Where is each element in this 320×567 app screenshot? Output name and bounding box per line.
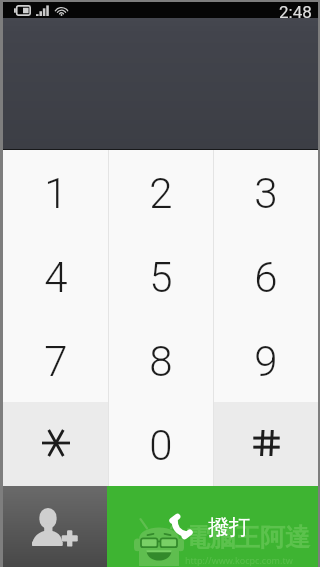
- button[interactable]: 9: [214, 318, 318, 402]
- staticText: 2: [149, 169, 173, 218]
- staticText: 7: [44, 337, 68, 386]
- staticText: 0: [149, 421, 173, 470]
- button[interactable]: 3: [214, 150, 318, 234]
- button[interactable]: 7: [3, 318, 108, 402]
- staticText: 5: [149, 253, 173, 302]
- button[interactable]: Add contact: [3, 486, 107, 567]
- button[interactable]: 電腦王阿達: [107, 486, 318, 567]
- button[interactable]: [214, 402, 318, 486]
- button[interactable]: 5: [109, 234, 213, 318]
- button[interactable]: 2: [109, 150, 213, 234]
- staticText: 1: [44, 169, 68, 218]
- button[interactable]: 4: [3, 234, 108, 318]
- staticText: 電腦王阿達: [185, 522, 310, 553]
- button[interactable]: [3, 402, 108, 486]
- staticText: 9: [254, 337, 278, 386]
- staticText: 3: [254, 169, 278, 218]
- staticText: http://www.kocpc.com.tw: [185, 554, 293, 566]
- button[interactable]: 6: [214, 234, 318, 318]
- staticText: 撥打: [208, 514, 250, 540]
- staticText: 6: [254, 253, 278, 302]
- staticText: 2:48: [279, 2, 312, 18]
- staticText: 8: [149, 337, 173, 386]
- button[interactable]: 0: [109, 402, 213, 486]
- staticText: 4: [44, 253, 68, 302]
- button[interactable]: 1: [3, 150, 108, 234]
- button[interactable]: 8: [109, 318, 213, 402]
